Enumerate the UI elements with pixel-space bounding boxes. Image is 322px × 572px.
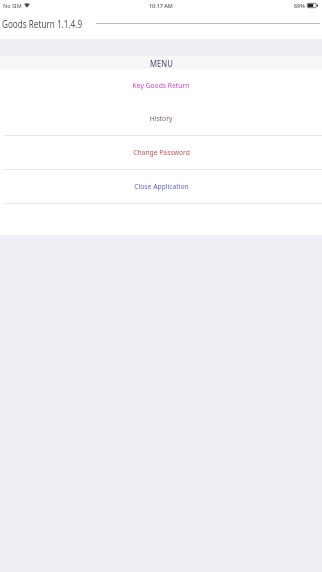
staticText: 69% — [294, 2, 305, 9]
staticText: History — [149, 113, 173, 123]
staticText: Close Application — [134, 181, 189, 191]
staticText: No SIM — [3, 2, 22, 9]
staticText: Change Password — [133, 147, 190, 157]
button[interactable]: Key Goods Return — [0, 69, 322, 102]
staticText: MENU — [150, 57, 173, 69]
button[interactable]: Close Application — [0, 170, 322, 203]
staticText: Key Goods Return — [132, 80, 190, 90]
staticText: 10:17 AM — [149, 2, 173, 9]
other: Battery 69 percent — [307, 3, 318, 8]
other: Wi-Fi — [24, 3, 30, 8]
button[interactable]: History — [0, 102, 322, 135]
staticText: Goods Return 1.1.4.9 — [2, 16, 83, 31]
button[interactable]: Change Password — [0, 136, 322, 169]
